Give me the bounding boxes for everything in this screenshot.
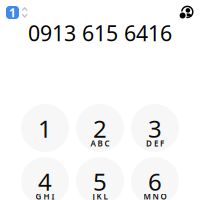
staticText: M N O (143, 191, 166, 200)
button[interactable]: 6 (131, 157, 179, 200)
staticText: 0913 615 6416 (28, 19, 172, 47)
staticText: A B C (90, 138, 109, 149)
button[interactable]: 1 (21, 104, 69, 152)
button[interactable]: 5 (76, 157, 124, 200)
button[interactable]: 2 (76, 104, 124, 152)
button[interactable]: 3 (131, 104, 179, 152)
staticText: 5 (93, 166, 107, 197)
staticText: J K L (92, 191, 107, 200)
staticText: 1 (9, 4, 16, 20)
staticText: D E F (146, 138, 164, 149)
button[interactable]: 4 (21, 157, 69, 200)
staticText: 6 (148, 166, 162, 197)
staticText: 2 (93, 113, 107, 144)
staticText: 4 (38, 166, 52, 197)
button[interactable]: Select SIM (6, 6, 28, 19)
button[interactable]: Contacts (178, 5, 193, 20)
staticText: 3 (148, 113, 162, 144)
staticText: G H I (35, 191, 54, 200)
staticText: 1 (38, 113, 52, 144)
